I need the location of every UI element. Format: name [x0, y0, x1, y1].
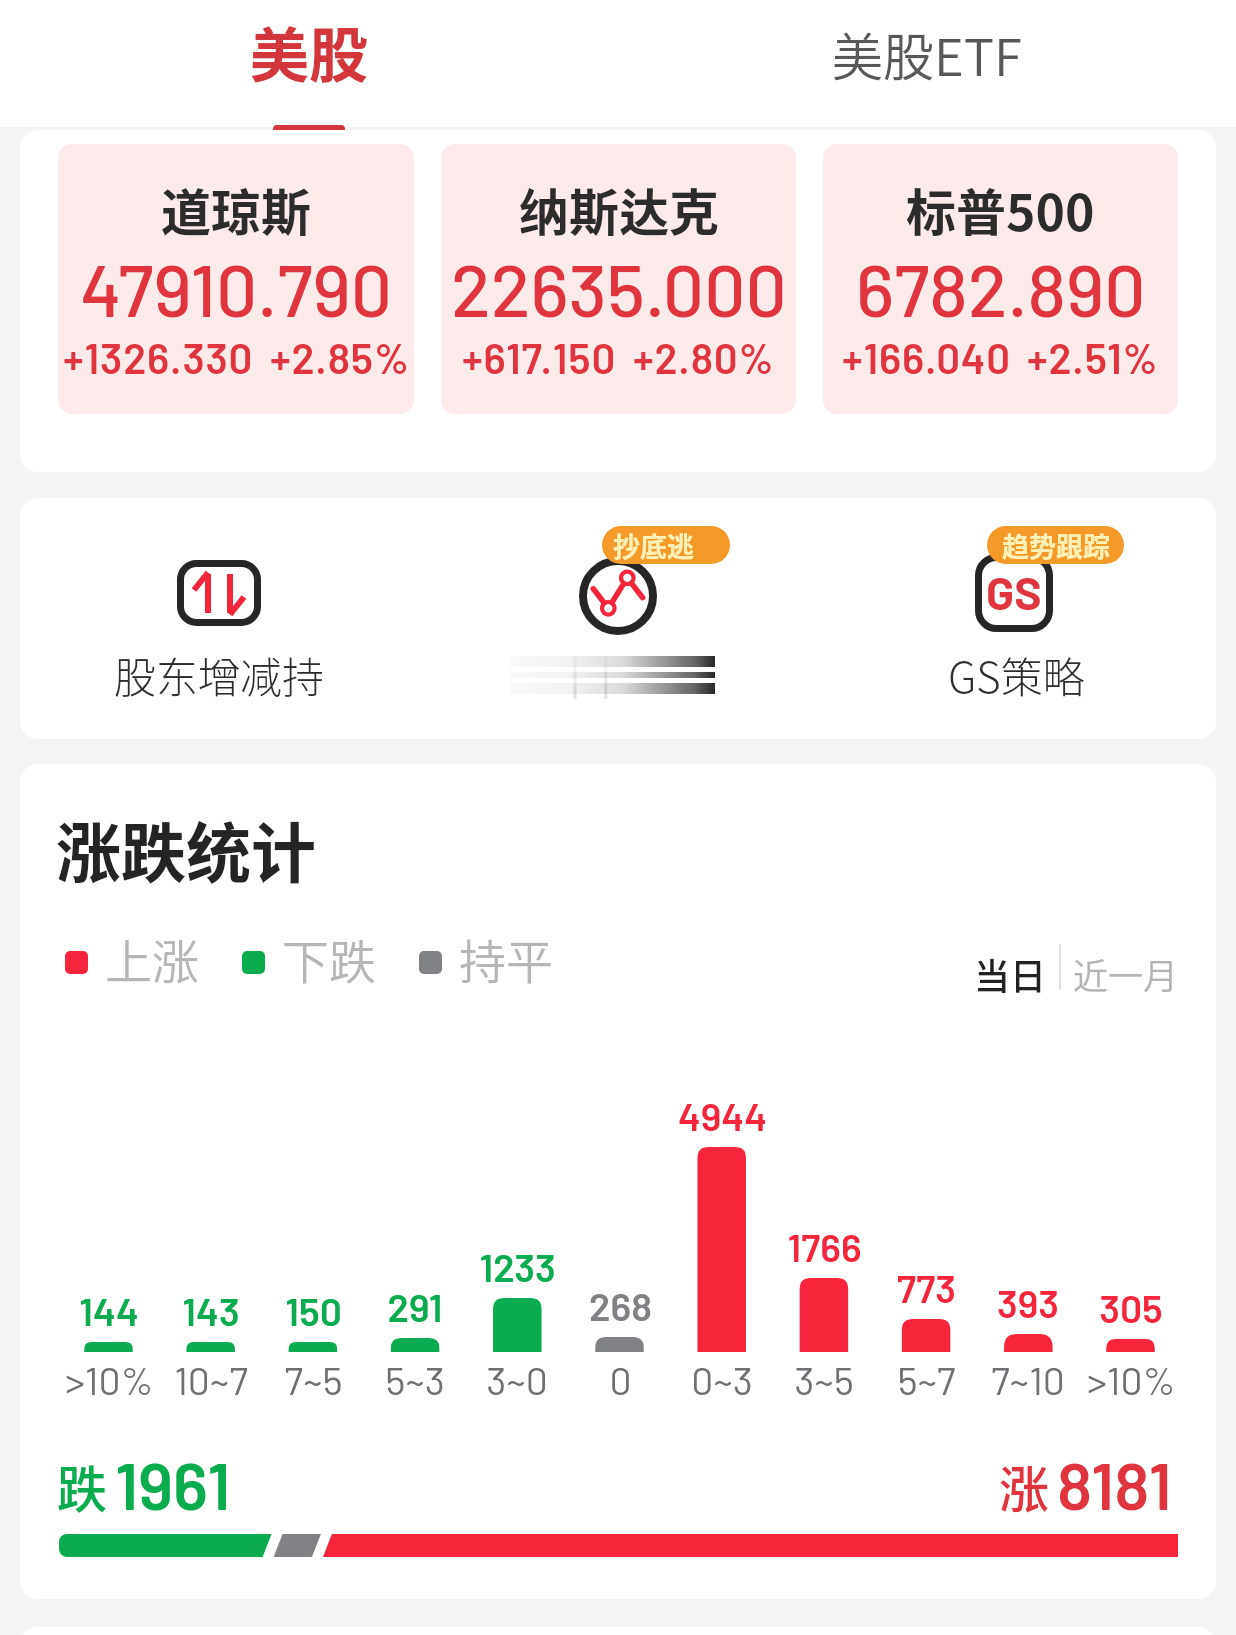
staticText: GS: [986, 564, 1042, 619]
staticText: 150: [285, 1287, 342, 1334]
button[interactable]: 股东增减持: [20, 498, 418, 739]
staticText: 47910.790: [80, 244, 393, 332]
staticText: 4944: [678, 1092, 767, 1139]
staticText: 涨: [999, 1450, 1049, 1522]
staticText: 跌: [57, 1450, 107, 1522]
button[interactable]: 美股ETF: [618, 0, 1236, 127]
staticText: 8181: [1057, 1444, 1172, 1523]
staticText: +166.040: [842, 332, 1011, 382]
button[interactable]: 持平: [419, 924, 553, 992]
staticText: 1961: [115, 1444, 231, 1523]
staticText: 纳斯达克: [519, 173, 719, 245]
button[interactable]: 美股: [0, 0, 618, 127]
staticText: >10%: [1087, 1356, 1176, 1403]
staticText: +617.150: [462, 332, 617, 382]
staticText: 涨跌统计: [56, 802, 317, 896]
button[interactable]: 纳斯达克: [441, 144, 796, 414]
staticText: 道琼斯: [161, 173, 311, 245]
button[interactable]: 上涨: [65, 924, 199, 992]
staticText: 美股: [250, 9, 369, 94]
staticText: 1233: [479, 1243, 556, 1290]
button[interactable]: 当日: [974, 948, 1047, 1000]
staticText: 抄底逃顶: [613, 526, 719, 564]
staticText: 268: [589, 1282, 652, 1329]
staticText: 22635.000: [451, 244, 787, 332]
staticText: 0~3: [691, 1356, 753, 1403]
staticText: 近一月: [1073, 948, 1179, 999]
button[interactable]: 道琼斯: [58, 144, 414, 414]
staticText: 0: [609, 1356, 632, 1403]
button[interactable]: GS策略: [817, 498, 1216, 739]
staticText: 5~3: [385, 1356, 445, 1403]
staticText: 393: [997, 1279, 1059, 1326]
staticText: 7~5: [284, 1356, 343, 1403]
staticText: 股东增减持: [114, 644, 325, 705]
button[interactable]: 近一月: [1073, 948, 1179, 999]
button[interactable]: 标普500: [823, 144, 1178, 414]
staticText: 上涨: [105, 924, 199, 992]
staticText: 1766: [787, 1223, 862, 1270]
button[interactable]: 抄底逃顶策略: [418, 498, 817, 739]
staticText: 持平: [459, 924, 553, 992]
staticText: 5~7: [897, 1356, 956, 1403]
staticText: 当日: [974, 948, 1047, 1000]
staticText: 下跌: [282, 924, 376, 992]
staticText: +1326.330: [63, 332, 254, 382]
staticText: 趋势跟踪: [1002, 526, 1110, 564]
staticText: 144: [79, 1287, 139, 1334]
staticText: +2.85%: [270, 332, 410, 382]
staticText: 6782.890: [856, 244, 1146, 332]
staticText: 3~5: [794, 1356, 854, 1403]
staticText: +2.80%: [633, 332, 775, 382]
staticText: 美股ETF: [832, 17, 1022, 91]
staticText: >10%: [65, 1356, 154, 1403]
staticText: 标普500: [906, 173, 1095, 245]
staticText: 143: [182, 1287, 240, 1334]
staticText: 291: [387, 1283, 443, 1330]
staticText: 7~10: [991, 1356, 1065, 1403]
staticText: 3~0: [486, 1356, 548, 1403]
staticText: GS策略: [948, 644, 1085, 705]
staticText: 773: [897, 1264, 956, 1311]
button[interactable]: 下跌: [242, 924, 376, 992]
staticText: 10~7: [174, 1356, 248, 1403]
staticText: +2.51%: [1027, 332, 1159, 382]
staticText: 305: [1099, 1284, 1163, 1331]
